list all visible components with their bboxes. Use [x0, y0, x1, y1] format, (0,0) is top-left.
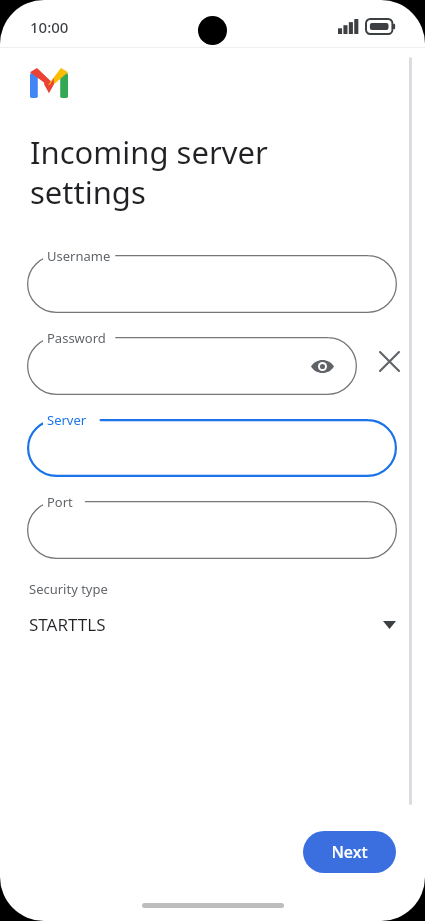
staticText: Password	[47, 329, 106, 347]
staticText: 10:00	[30, 17, 69, 37]
staticText: STARTTLS	[29, 613, 106, 636]
staticText: Server	[47, 411, 87, 429]
button[interactable]: Server	[27, 409, 397, 477]
staticText: Username	[47, 247, 111, 265]
button[interactable]: Show password	[305, 349, 339, 383]
button[interactable]: Password	[27, 327, 357, 395]
staticText: Security type	[29, 580, 108, 598]
button[interactable]: Next	[303, 831, 396, 873]
staticText: Next	[331, 841, 368, 863]
button[interactable]: Security type	[29, 580, 396, 636]
button[interactable]: Port	[27, 491, 397, 559]
button[interactable]: Username	[27, 245, 397, 313]
staticText: Incoming server settings	[30, 131, 268, 213]
button[interactable]: Clear password	[369, 341, 409, 381]
staticText: Port	[47, 493, 73, 511]
